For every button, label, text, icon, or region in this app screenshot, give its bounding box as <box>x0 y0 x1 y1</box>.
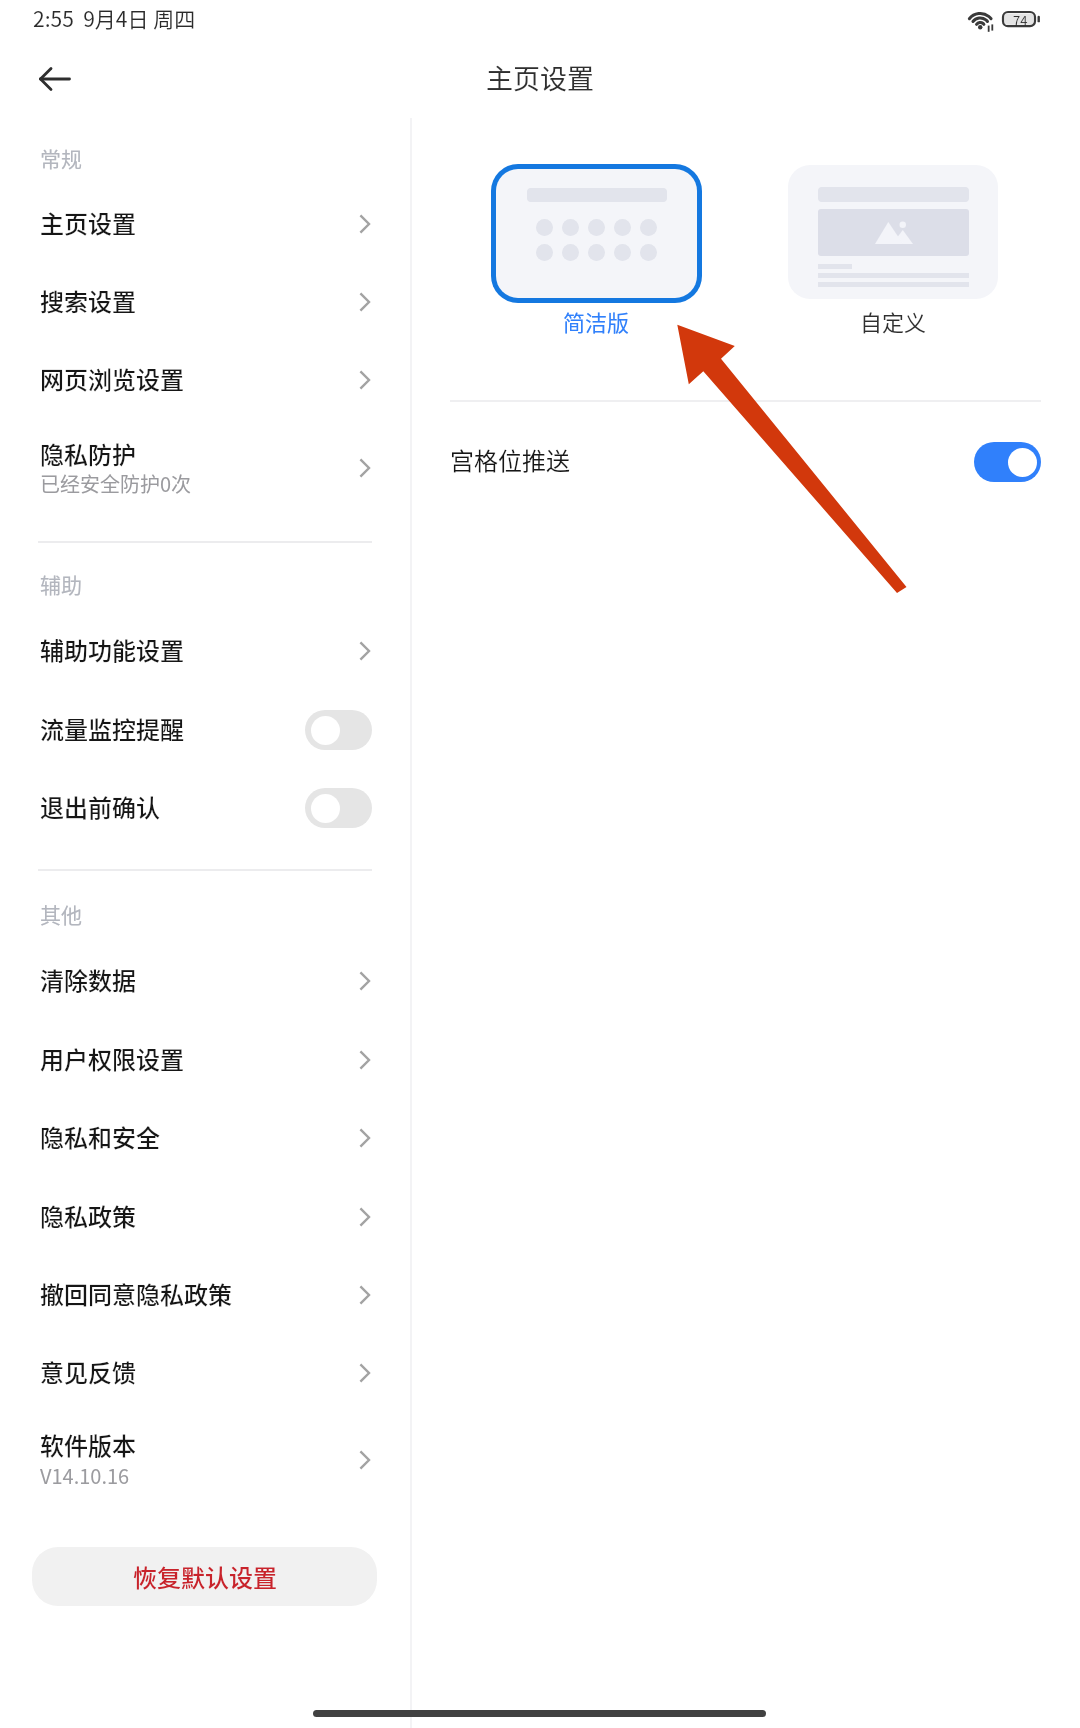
staticText: 隐私和安全 <box>40 1119 160 1154</box>
staticText: 自定义 <box>860 305 927 337</box>
staticText: 主页设置 <box>40 205 136 240</box>
button[interactable]: 用户权限设置 <box>0 1021 410 1099</box>
button[interactable]: 宫格位推送 <box>411 411 1080 511</box>
staticText: 主页设置 <box>486 58 594 97</box>
button[interactable]: Toggle on <box>974 442 1041 482</box>
button[interactable]: 恢复默认设置 <box>32 1547 377 1606</box>
staticText: 恢复默认设置 <box>133 1559 277 1594</box>
staticText: V14.10.16 <box>40 1461 130 1490</box>
button[interactable]: 意见反馈 <box>0 1334 410 1412</box>
staticText: 74 <box>1013 11 1028 29</box>
staticText: 网页浏览设置 <box>40 361 184 396</box>
staticText: 2:55 9月4日 周四 <box>33 3 196 33</box>
staticText: 常规 <box>40 143 82 173</box>
staticText: 流量监控提醒 <box>40 711 184 746</box>
staticText: 宫格位推送 <box>450 442 570 477</box>
button[interactable]: 撤回同意隐私政策 <box>0 1256 410 1334</box>
button[interactable]: 隐私防护 <box>0 416 410 502</box>
staticText: 搜索设置 <box>40 283 136 318</box>
staticText: 撤回同意隐私政策 <box>40 1276 232 1311</box>
button[interactable]: 流量监控提醒 <box>0 691 410 769</box>
button[interactable]: 隐私政策 <box>0 1178 410 1256</box>
staticText: 清除数据 <box>40 962 136 997</box>
staticText: 辅助功能设置 <box>40 632 184 667</box>
staticText: 辅助 <box>40 569 82 599</box>
staticText: 用户权限设置 <box>40 1041 184 1076</box>
button[interactable]: Toggle off <box>305 710 372 750</box>
staticText: 已经安全防护0次 <box>40 469 192 498</box>
button[interactable]: 自定义 <box>788 165 998 299</box>
button[interactable]: 隐私和安全 <box>0 1099 410 1177</box>
staticText: 隐私政策 <box>40 1198 136 1233</box>
button[interactable]: 简洁版 <box>491 164 702 303</box>
button[interactable]: 网页浏览设置 <box>0 341 410 419</box>
button[interactable]: 辅助功能设置 <box>0 612 410 690</box>
staticText: 其他 <box>40 899 82 929</box>
button[interactable]: 清除数据 <box>0 942 410 1020</box>
staticText: 隐私防护 <box>40 436 136 471</box>
staticText: 软件版本 <box>40 1427 136 1462</box>
staticText: 简洁版 <box>563 305 630 337</box>
staticText: 退出前确认 <box>40 789 160 824</box>
button[interactable]: 搜索设置 <box>0 263 410 341</box>
button[interactable]: Toggle off <box>305 788 372 828</box>
button[interactable]: Back <box>22 46 88 112</box>
staticText: 意见反馈 <box>40 1354 136 1389</box>
button[interactable]: 退出前确认 <box>0 769 410 847</box>
button[interactable]: 主页设置 <box>0 185 410 263</box>
button[interactable]: 软件版本 <box>0 1407 410 1493</box>
